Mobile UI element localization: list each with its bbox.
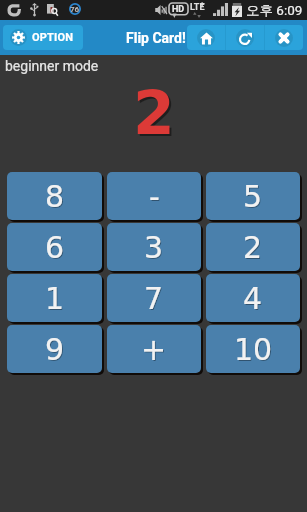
staticText: Flip Card! [126, 30, 186, 46]
staticText: 1 [46, 282, 66, 317]
button[interactable]: OPTION [3, 25, 83, 50]
button[interactable]: 5 [206, 172, 300, 220]
staticText: 2 [135, 80, 177, 140]
staticText: 6 [45, 230, 65, 265]
staticText: 8 [45, 179, 65, 214]
button[interactable]: 4 [206, 274, 300, 322]
button[interactable]: 9 [7, 325, 102, 373]
button[interactable]: 10 [206, 325, 300, 373]
button[interactable]: 3 [107, 223, 201, 271]
button[interactable]: Close [265, 25, 303, 50]
button[interactable]: + [107, 325, 201, 373]
staticText: + [141, 332, 167, 367]
button[interactable]: Refresh [226, 25, 264, 50]
button[interactable]: 2 [206, 223, 300, 271]
button[interactable]: 7 [107, 274, 201, 322]
staticText: 10 [234, 332, 273, 367]
button[interactable]: 6 [7, 223, 102, 271]
staticText: 3 [144, 230, 164, 265]
staticText: 3 [145, 231, 165, 266]
staticText: beginner mode [5, 58, 99, 74]
staticText: LTE [190, 2, 205, 13]
staticText: 76 [70, 5, 80, 14]
staticText: 8 [46, 180, 66, 215]
staticText: 10 [235, 333, 274, 368]
staticText: 2 [133, 78, 175, 138]
staticText: HD [172, 4, 185, 15]
button[interactable]: - [107, 172, 201, 220]
staticText: 5 [243, 179, 263, 214]
staticText: 7 [144, 281, 164, 316]
staticText: 1 [45, 281, 65, 316]
staticText: OPTION [32, 31, 74, 44]
staticText: + [200, 0, 205, 9]
staticText: - [150, 180, 161, 215]
staticText: 6 [46, 231, 66, 266]
staticText: 오후 6:09 [246, 2, 303, 19]
staticText: 7 [145, 282, 165, 317]
staticText: + [142, 333, 168, 368]
button[interactable]: Home [187, 25, 225, 50]
staticText: 9 [46, 333, 66, 368]
button[interactable]: 1 [7, 274, 102, 322]
staticText: 2 [243, 230, 263, 265]
staticText: 4 [244, 282, 264, 317]
staticText: 9 [45, 332, 65, 367]
staticText: - [149, 179, 160, 214]
button[interactable]: 8 [7, 172, 102, 220]
staticText: 5 [244, 180, 264, 215]
staticText: 2 [244, 231, 264, 266]
staticText: 4 [243, 281, 263, 316]
